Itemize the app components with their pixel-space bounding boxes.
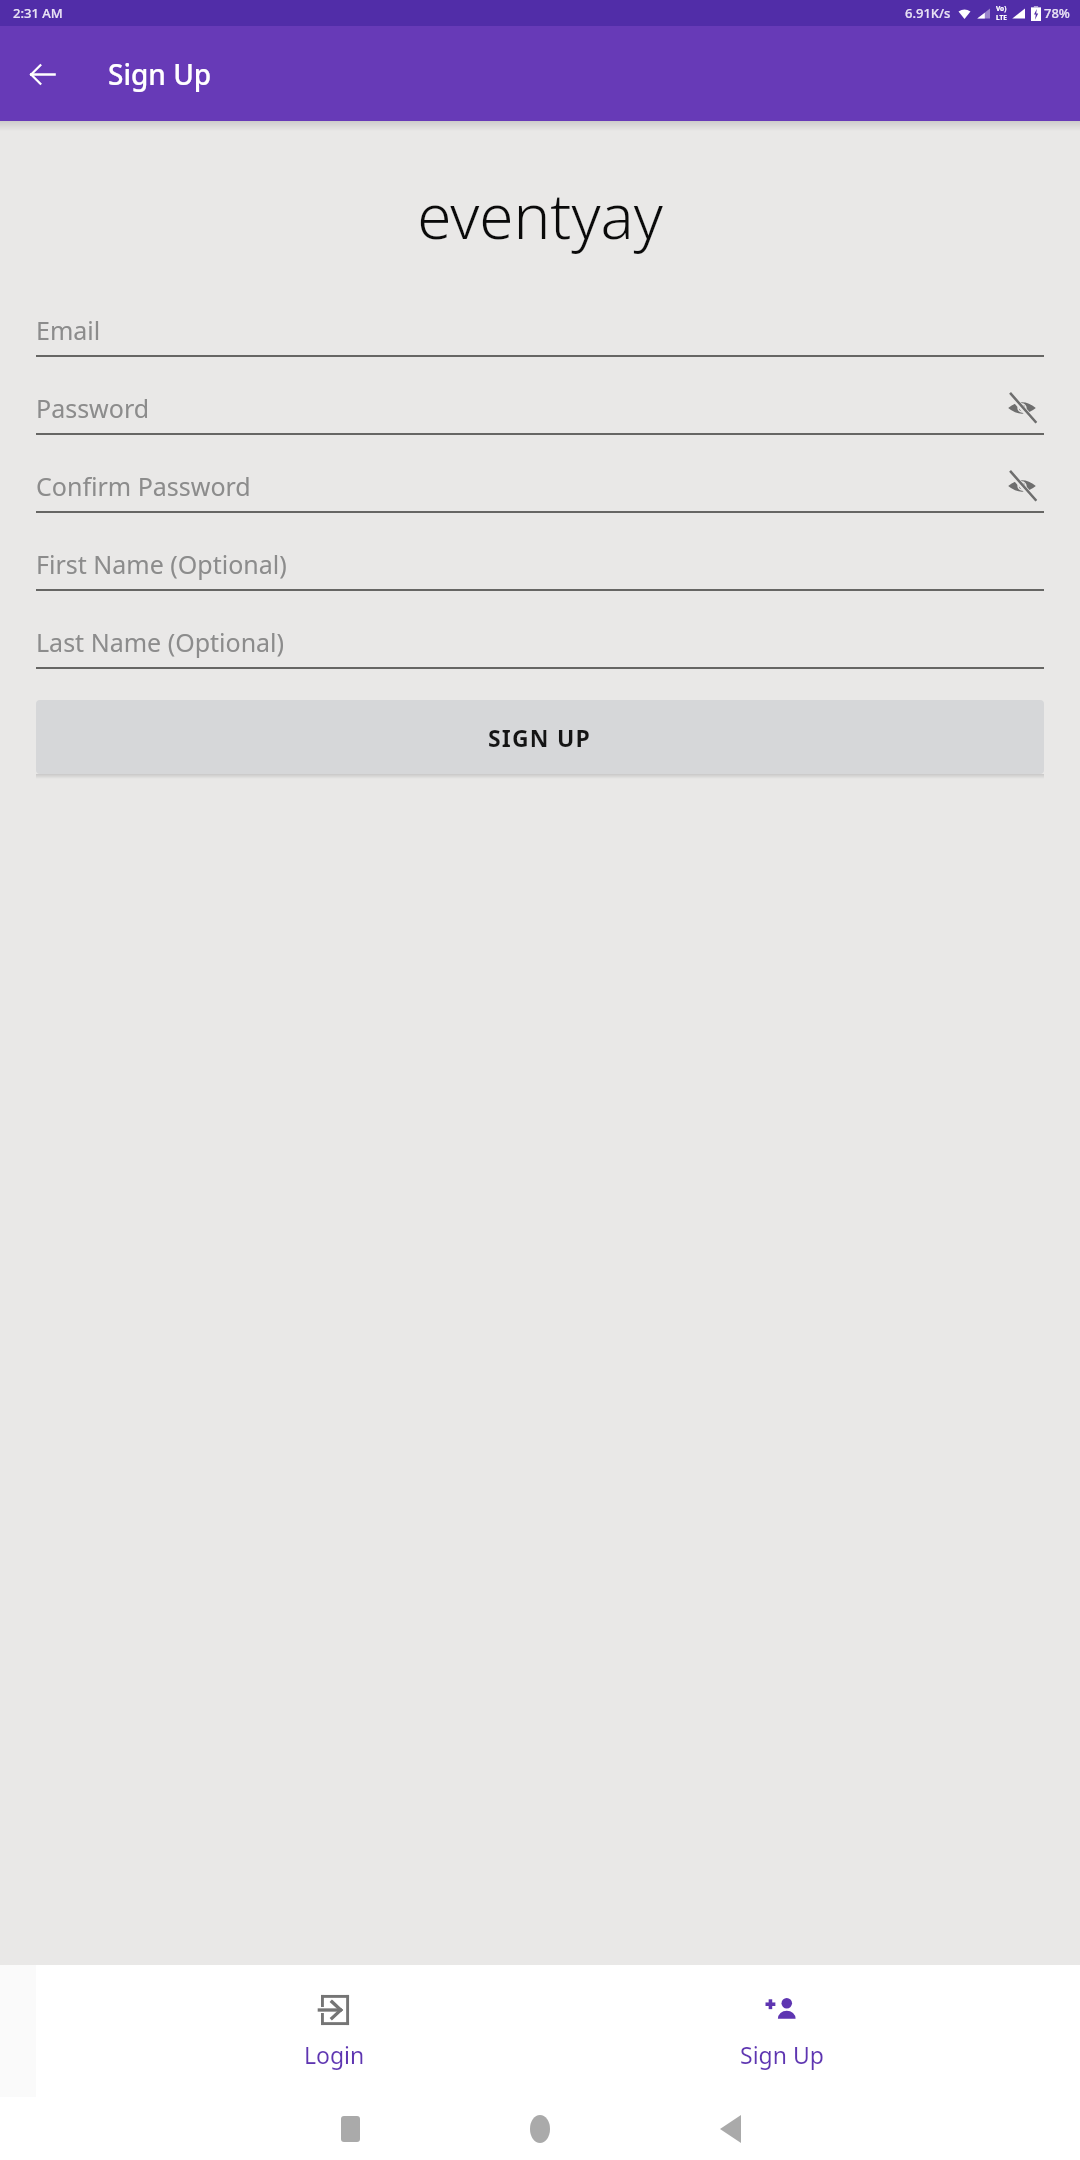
staticText: Vo) xyxy=(996,4,1007,13)
other: Back xyxy=(720,2115,741,2143)
staticText: Password xyxy=(36,391,150,425)
staticText: 2:31 AM xyxy=(13,4,63,22)
button[interactable]: Back xyxy=(14,46,70,102)
staticText: Sign Up xyxy=(740,2039,824,2070)
staticText: Confirm Password xyxy=(36,469,251,503)
button[interactable]: Login xyxy=(184,1983,484,2080)
other: Recents xyxy=(341,2116,360,2142)
staticText: First Name (Optional) xyxy=(36,547,287,581)
button[interactable]: First Name (Optional) xyxy=(36,539,1044,589)
button[interactable]: Confirm Password xyxy=(36,461,1044,511)
staticText: eventyay xyxy=(0,173,1080,257)
button[interactable]: Sign Up xyxy=(632,1983,932,2080)
staticText: SIGN UP xyxy=(488,722,592,753)
button[interactable]: Email xyxy=(36,305,1044,355)
button[interactable]: SIGN UP xyxy=(36,700,1044,774)
staticText: Sign Up xyxy=(108,55,212,93)
button[interactable]: Toggle password visibility xyxy=(1000,386,1044,430)
button[interactable]: Password xyxy=(36,383,1044,433)
staticText: 6.91K/s xyxy=(905,4,951,22)
staticText: Last Name (Optional) xyxy=(36,625,285,659)
staticText: 78% xyxy=(1044,4,1070,22)
button[interactable]: Toggle password visibility xyxy=(1000,464,1044,508)
other: Home xyxy=(530,2115,550,2143)
staticText: Login xyxy=(304,2039,365,2070)
button[interactable]: Last Name (Optional) xyxy=(36,617,1044,667)
staticText: Email xyxy=(36,313,101,347)
staticText: LTE xyxy=(996,13,1007,22)
